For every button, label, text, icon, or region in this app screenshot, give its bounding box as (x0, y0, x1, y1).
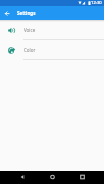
button[interactable]: Voice (0, 20, 104, 40)
button[interactable]: Back (15, 171, 29, 184)
button[interactable]: Home (45, 171, 59, 184)
staticText: Color (24, 47, 36, 53)
staticText: Settings (17, 10, 36, 16)
button[interactable]: Color (0, 40, 104, 60)
button[interactable]: Back (0, 6, 14, 20)
staticText: 12:30 (91, 0, 102, 6)
button[interactable]: Recent apps (75, 171, 89, 184)
staticText: Voice (24, 27, 36, 33)
